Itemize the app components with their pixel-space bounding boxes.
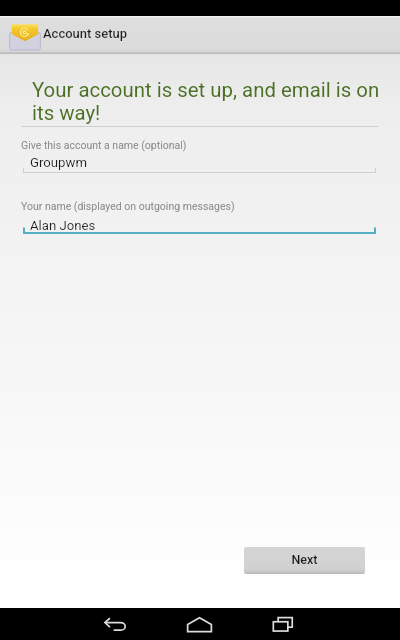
staticText: Groupwm xyxy=(30,155,87,170)
staticText: Next xyxy=(291,552,318,567)
staticText: Your account is set up, and email is on … xyxy=(32,78,380,125)
button[interactable]: Recent apps xyxy=(261,608,305,640)
staticText: Alan Jones xyxy=(30,218,96,233)
button[interactable]: Home xyxy=(177,608,221,640)
button[interactable]: Next xyxy=(244,547,365,574)
staticText: Account setup xyxy=(43,26,128,41)
button[interactable]: Back xyxy=(93,608,137,640)
staticText: Give this account a name (optional) xyxy=(21,139,187,151)
staticText: Your name (displayed on outgoing message… xyxy=(21,200,235,212)
